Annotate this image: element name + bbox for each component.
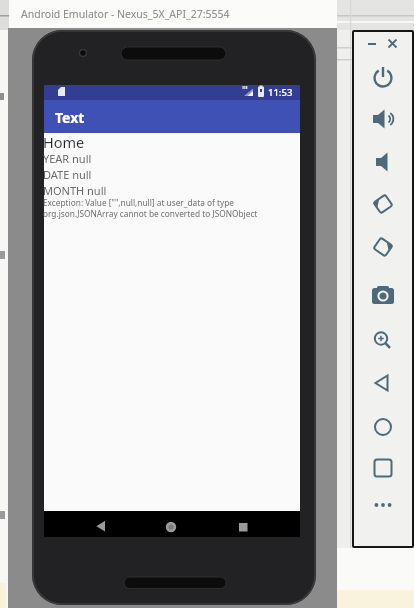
button[interactable] (157, 511, 185, 537)
button[interactable] (367, 146, 399, 178)
staticText: org.json.JSONArray cannot be converted t… (43, 208, 258, 219)
button[interactable] (367, 62, 399, 94)
button[interactable] (229, 511, 257, 537)
button[interactable] (367, 188, 399, 220)
button[interactable] (87, 511, 115, 537)
button[interactable] (367, 452, 399, 484)
button[interactable] (367, 489, 399, 521)
staticText: MONTH null (43, 183, 107, 198)
button[interactable] (367, 411, 399, 443)
staticText: Android Emulator - Nexus_5X_API_27:5554 (21, 7, 230, 21)
staticText: DATE null (43, 167, 92, 182)
button[interactable] (364, 36, 380, 52)
staticText: 11:53 (268, 86, 293, 99)
button[interactable] (367, 279, 399, 311)
button[interactable] (367, 367, 399, 399)
button[interactable] (367, 231, 399, 263)
staticText: Exception: Value ["",null,null] at user_… (43, 197, 235, 208)
button[interactable] (367, 103, 399, 135)
staticText: YEAR null (43, 151, 92, 166)
staticText: Home (43, 132, 85, 152)
button[interactable] (367, 325, 399, 357)
button[interactable] (384, 35, 402, 53)
staticText: Text (55, 108, 85, 127)
